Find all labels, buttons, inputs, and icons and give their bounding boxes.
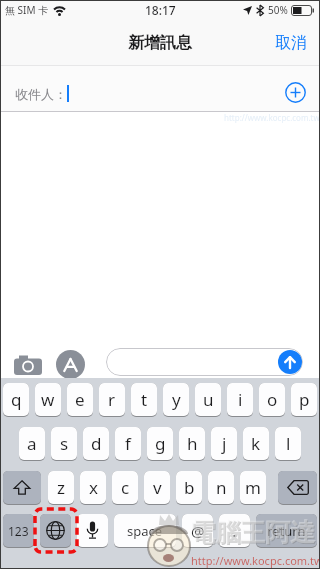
staticText: o	[267, 388, 278, 411]
button[interactable]: @	[182, 514, 213, 548]
button[interactable]: g	[147, 427, 173, 461]
staticText: w	[41, 388, 55, 411]
staticText: 新增訊息	[128, 33, 192, 53]
staticText: 取消	[275, 33, 307, 53]
staticText: space	[127, 522, 163, 540]
button[interactable]	[40, 514, 71, 548]
staticText: e	[75, 388, 85, 411]
staticText: z	[57, 476, 65, 499]
staticText: s	[60, 432, 69, 455]
staticText: j	[222, 432, 227, 455]
button[interactable]: k	[243, 427, 269, 461]
staticText: r	[108, 388, 116, 411]
button[interactable]: y	[163, 383, 189, 417]
button[interactable]: z	[48, 471, 74, 505]
button[interactable]: h	[179, 427, 205, 461]
button[interactable]: c	[112, 471, 138, 505]
staticText: t	[141, 388, 148, 411]
staticText: http://www.kocpc.com.tw	[191, 553, 320, 568]
button[interactable]: v	[144, 471, 170, 505]
button[interactable]: f	[115, 427, 141, 461]
staticText: 50%	[268, 3, 288, 17]
staticText: n	[216, 476, 227, 499]
staticText: y	[172, 388, 181, 411]
button[interactable]: d	[83, 427, 109, 461]
staticText: k	[251, 432, 261, 455]
button[interactable]: s	[51, 427, 77, 461]
button[interactable]	[77, 514, 108, 548]
button[interactable]: 取消	[275, 20, 320, 66]
button[interactable]: w	[35, 383, 61, 417]
staticText: return	[267, 522, 306, 540]
staticText: u	[203, 388, 214, 411]
button[interactable]: q	[3, 383, 29, 417]
staticText: @	[191, 521, 205, 541]
staticText: c	[121, 476, 130, 499]
staticText: q	[11, 388, 22, 411]
staticText: 無 SIM 卡	[5, 3, 49, 17]
staticText: l	[286, 432, 291, 455]
button[interactable]: b	[176, 471, 202, 505]
staticText: 收件人：	[15, 86, 67, 102]
button[interactable]: 收件人：	[0, 66, 320, 112]
staticText: g	[155, 432, 166, 455]
button[interactable]: u	[195, 383, 221, 417]
staticText: b	[184, 476, 195, 499]
button[interactable]: n	[208, 471, 234, 505]
button[interactable]	[106, 348, 303, 376]
button[interactable]: .	[219, 514, 250, 548]
staticText: 電腦王阿達	[190, 517, 315, 548]
staticText: f	[125, 432, 131, 455]
button[interactable]	[278, 471, 317, 505]
staticText: i	[238, 388, 243, 411]
staticText: x	[89, 476, 98, 499]
button[interactable]: 123	[3, 514, 34, 548]
button[interactable]	[278, 350, 302, 374]
button[interactable]: l	[275, 427, 301, 461]
button[interactable]	[285, 82, 306, 103]
button[interactable]: e	[67, 383, 93, 417]
staticText: 123	[8, 523, 29, 539]
staticText: d	[91, 432, 102, 455]
button[interactable]: return	[256, 514, 317, 548]
staticText: http://www.kocpc.com.tw	[224, 112, 320, 123]
button[interactable]: t	[131, 383, 157, 417]
button[interactable]: o	[259, 383, 285, 417]
staticText: h	[187, 432, 198, 455]
button[interactable]: x	[80, 471, 106, 505]
button[interactable]: j	[211, 427, 237, 461]
button[interactable]	[56, 350, 85, 379]
staticText: a	[27, 432, 37, 455]
staticText: v	[153, 476, 162, 499]
button[interactable]: r	[99, 383, 125, 417]
staticText: 18:17	[145, 2, 176, 18]
button[interactable]	[14, 355, 44, 375]
button[interactable]: m	[240, 471, 266, 505]
button[interactable]: space	[114, 514, 176, 548]
staticText: p	[299, 388, 310, 411]
staticText: m	[245, 476, 261, 499]
staticText: 電腦王阿達	[191, 518, 316, 549]
button[interactable]: p	[291, 383, 317, 417]
button[interactable]	[3, 471, 41, 505]
staticText: .	[232, 519, 237, 542]
button[interactable]: i	[227, 383, 253, 417]
button[interactable]: a	[19, 427, 45, 461]
